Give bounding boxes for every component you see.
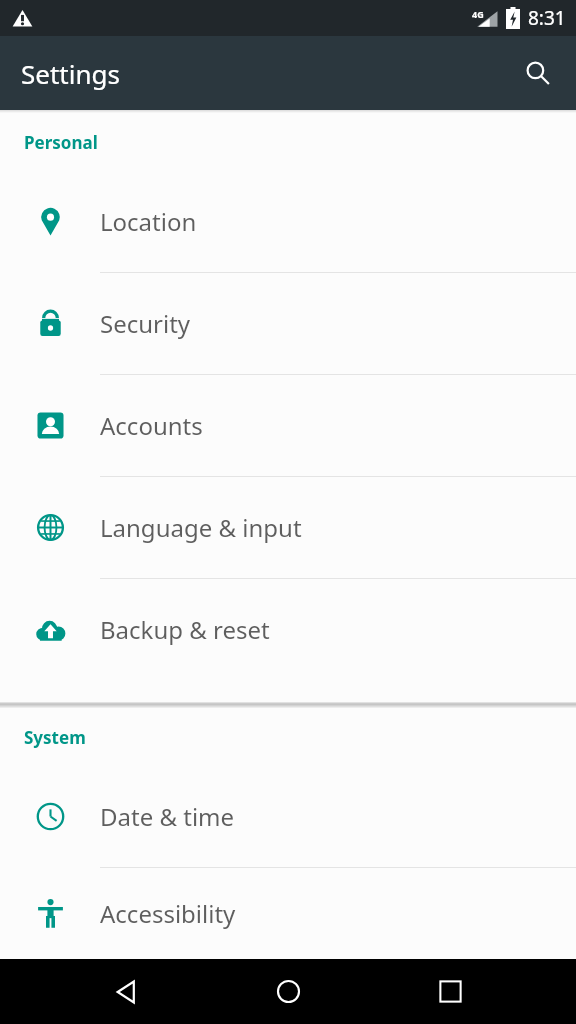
button[interactable]: Accessibility [0,868,576,959]
button[interactable]: Backup & reset [0,579,576,680]
button[interactable]: Date & time [0,766,576,867]
button[interactable]: Location [0,171,576,272]
staticText: Backup & reset [100,613,270,646]
button[interactable]: Home [252,959,324,1024]
staticText: Security [100,307,191,340]
button[interactable]: Accounts [0,375,576,476]
staticText: Language & input [100,511,302,544]
staticText: Personal [24,131,98,154]
button[interactable]: Language & input [0,477,576,578]
staticText: 4G [472,8,484,20]
button[interactable]: Recent apps [414,959,486,1024]
staticText: Accounts [100,409,203,442]
staticText: 8:31 [528,5,566,31]
staticText: System [24,726,86,749]
staticText: Location [100,205,197,238]
button[interactable]: Search [516,51,560,95]
staticText: Date & time [100,800,235,833]
staticText: Settings [21,56,120,91]
button[interactable]: Back [90,959,162,1024]
staticText: Accessibility [100,897,236,930]
button[interactable]: Security [0,273,576,374]
